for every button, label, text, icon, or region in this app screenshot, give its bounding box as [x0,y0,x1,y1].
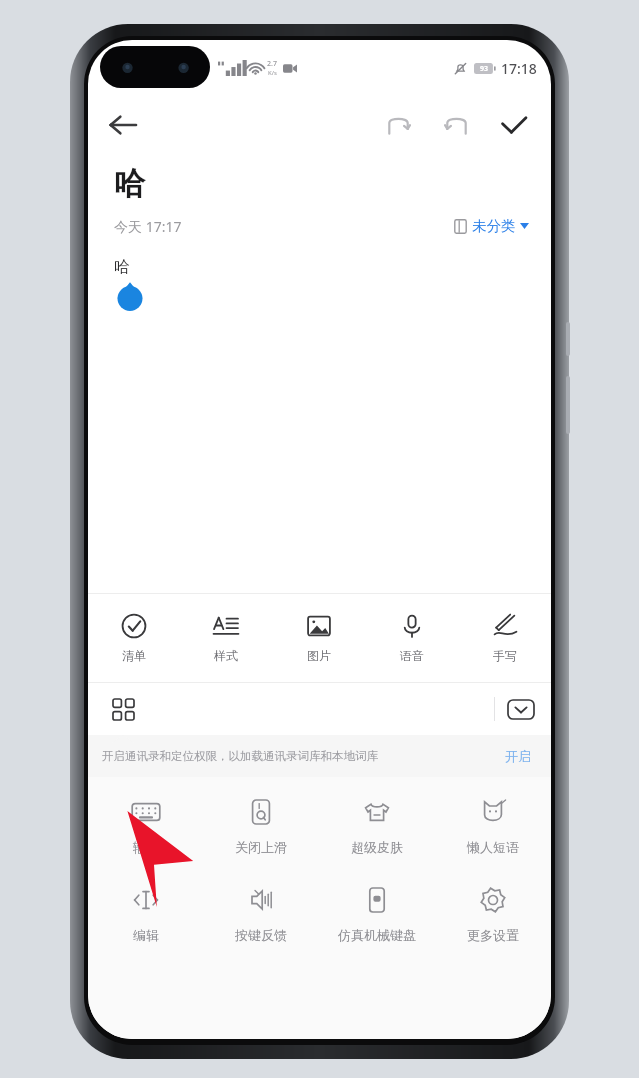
staticText: 图片 [307,648,331,663]
button[interactable]: 未分类 [454,213,529,239]
button[interactable]: Back [98,101,146,149]
staticText: 2.7 [267,59,277,69]
staticText: 开启 [505,748,531,764]
button[interactable]: 编辑 [88,879,203,949]
staticText: 样式 [214,648,238,663]
staticText: 17:18 [501,59,537,78]
button[interactable]: 开启 [499,744,537,768]
staticText: 输入 [133,839,159,855]
button[interactable]: 超级皮肤 [319,791,435,861]
button[interactable]: 样式 [180,594,272,682]
button[interactable]: Undo [375,102,421,148]
staticText: 关闭上滑 [235,839,287,855]
button[interactable]: 图片 [272,594,365,682]
button[interactable]: 清单 [88,594,180,682]
button[interactable]: 语音 [365,594,458,682]
staticText: 仿真机械键盘 [338,927,416,943]
button[interactable]: 按键反馈 [203,879,319,949]
button[interactable]: 关闭上滑 [203,791,319,861]
button[interactable]: Done [491,102,537,148]
staticText: K/s [268,69,277,77]
button[interactable]: 仿真机械键盘 [319,879,435,949]
staticText: 哈 [114,257,130,277]
staticText: 超级皮肤 [351,839,403,855]
staticText: 93 [480,64,489,74]
button[interactable]: 更多设置 [435,879,551,949]
button[interactable]: Redo [433,102,479,148]
staticText: 更多设置 [467,927,519,943]
button[interactable]: Hide keyboard [499,687,543,731]
staticText: 今天 17:17 [114,217,182,236]
button[interactable]: 输入 [88,791,203,861]
button[interactable]: Keyboard menu [102,688,144,730]
staticText: 未分类 [472,217,516,235]
button[interactable]: 懒人短语 [435,791,551,861]
staticText: 懒人短语 [467,839,519,855]
staticText: 哈 [114,164,145,203]
staticText: 按键反馈 [235,927,287,943]
staticText: 开启通讯录和定位权限，以加载通讯录词库和本地词库 [102,749,378,763]
button[interactable]: 手写 [458,594,551,682]
staticText: 手写 [493,648,517,663]
staticText: 清单 [122,648,146,663]
staticText: 编辑 [133,927,159,943]
staticText: 语音 [400,648,424,663]
